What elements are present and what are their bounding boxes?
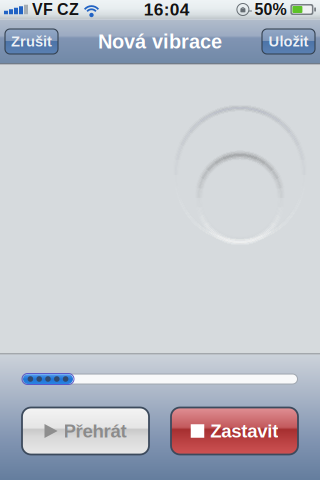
staticText: 50%: [254, 1, 286, 18]
staticText: VF CZ: [32, 1, 79, 18]
staticText: Zastavit: [210, 421, 278, 441]
staticText: 16:04: [144, 0, 190, 19]
staticText: Přehrát: [63, 421, 126, 441]
button[interactable]: Zrušit: [5, 29, 58, 54]
button[interactable]: Zastavit: [171, 407, 298, 454]
button[interactable]: Uložit: [262, 29, 315, 54]
button[interactable]: Přehrát: [22, 407, 149, 454]
staticText: Zrušit: [11, 33, 52, 50]
staticText: Uložit: [268, 33, 308, 50]
staticText: Nová vibrace: [98, 30, 222, 53]
